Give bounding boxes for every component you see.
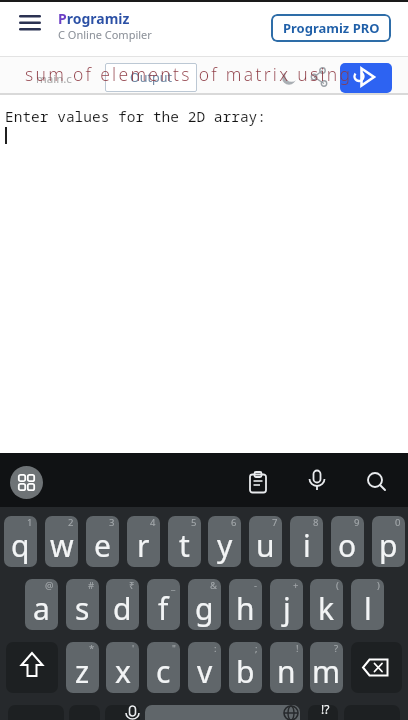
button[interactable]: t: [168, 516, 201, 567]
button[interactable]: l: [351, 579, 384, 630]
staticText: Output: [130, 69, 172, 86]
staticText: (: [336, 579, 339, 592]
button[interactable]: [10, 466, 43, 499]
staticText: ': [132, 642, 135, 655]
staticText: 6: [231, 516, 237, 529]
button[interactable]: e: [86, 516, 119, 567]
staticText: p: [379, 525, 398, 566]
staticText: sum of elements of matrix using: [25, 62, 353, 86]
button[interactable]: y: [208, 516, 241, 567]
staticText: z: [75, 651, 90, 692]
staticText: !: [296, 642, 299, 655]
staticText: y: [217, 525, 233, 566]
staticText: &: [210, 579, 217, 592]
staticText: _: [171, 579, 176, 592]
staticText: r: [137, 525, 150, 566]
staticText: c: [156, 651, 171, 692]
staticText: i: [303, 525, 311, 566]
button[interactable]: k: [310, 579, 343, 630]
staticText: Enter values for the 2D array:: [5, 106, 266, 126]
button[interactable]: [308, 66, 330, 88]
staticText: w: [50, 525, 74, 566]
staticText: l: [364, 588, 372, 629]
button[interactable]: h: [229, 579, 262, 630]
button[interactable]: n: [270, 642, 303, 693]
button[interactable]: b: [229, 642, 262, 693]
button[interactable]: [247, 471, 269, 494]
button[interactable]: w: [45, 516, 78, 567]
staticText: ": [172, 642, 176, 655]
staticText: v: [197, 651, 213, 692]
staticText: g: [195, 588, 214, 629]
button[interactable]: u: [249, 516, 282, 567]
staticText: a: [33, 588, 50, 629]
staticText: ;: [255, 642, 258, 655]
staticText: 9: [354, 516, 360, 529]
staticText: 2: [68, 516, 74, 529]
button[interactable]: f: [147, 579, 180, 630]
staticText: ₹: [129, 579, 135, 592]
button[interactable]: [340, 63, 392, 93]
staticText: Programiz PRO: [283, 19, 380, 37]
button[interactable]: p: [372, 516, 405, 567]
staticText: #: [88, 579, 95, 592]
staticText: s: [75, 588, 90, 629]
staticText: 3: [109, 516, 115, 529]
staticText: j: [283, 588, 291, 629]
button[interactable]: [105, 705, 140, 720]
staticText: 7: [272, 516, 278, 529]
staticText: u: [256, 525, 275, 566]
staticText: t: [179, 525, 190, 566]
button[interactable]: z: [66, 642, 99, 693]
staticText: 1: [27, 516, 33, 529]
staticText: h: [236, 588, 255, 629]
staticText: Programiz: [58, 9, 130, 28]
staticText: C Online Compiler: [58, 27, 152, 42]
button[interactable]: [14, 11, 48, 35]
button[interactable]: o: [331, 516, 364, 567]
staticText: :: [214, 642, 217, 655]
button[interactable]: [6, 642, 58, 693]
button[interactable]: q: [4, 516, 37, 567]
staticText: x: [115, 651, 131, 692]
button[interactable]: a: [25, 579, 58, 630]
staticText: m: [312, 651, 341, 692]
staticText: ?: [334, 642, 339, 655]
button[interactable]: Output: [105, 63, 197, 92]
staticText: 8: [313, 516, 319, 529]
staticText: 4: [150, 516, 156, 529]
button[interactable]: [351, 642, 402, 693]
staticText: 5: [191, 516, 197, 529]
button[interactable]: s: [66, 579, 99, 630]
button[interactable]: [306, 469, 328, 495]
button[interactable]: d: [106, 579, 139, 630]
button[interactable]: j: [270, 579, 303, 630]
staticText: k: [318, 588, 335, 629]
staticText: main.c: [36, 71, 72, 87]
button[interactable]: r: [127, 516, 160, 567]
button[interactable]: [145, 705, 300, 720]
staticText: @: [45, 579, 54, 592]
staticText: b: [236, 651, 255, 692]
button[interactable]: i: [290, 516, 323, 567]
staticText: d: [113, 588, 132, 629]
button[interactable]: [308, 705, 338, 720]
button[interactable]: [281, 69, 298, 86]
staticText: *: [89, 642, 95, 655]
button[interactable]: g: [188, 579, 221, 630]
button[interactable]: x: [106, 642, 139, 693]
button[interactable]: [365, 470, 389, 494]
staticText: !?: [321, 701, 330, 717]
staticText: ): [377, 579, 380, 592]
staticText: e: [94, 525, 111, 566]
staticText: f: [158, 588, 169, 629]
staticText: -: [254, 579, 258, 592]
staticText: o: [338, 525, 357, 566]
button[interactable]: Programiz PRO: [271, 14, 391, 42]
button[interactable]: v: [188, 642, 221, 693]
button[interactable]: m: [310, 642, 343, 693]
button[interactable]: c: [147, 642, 180, 693]
